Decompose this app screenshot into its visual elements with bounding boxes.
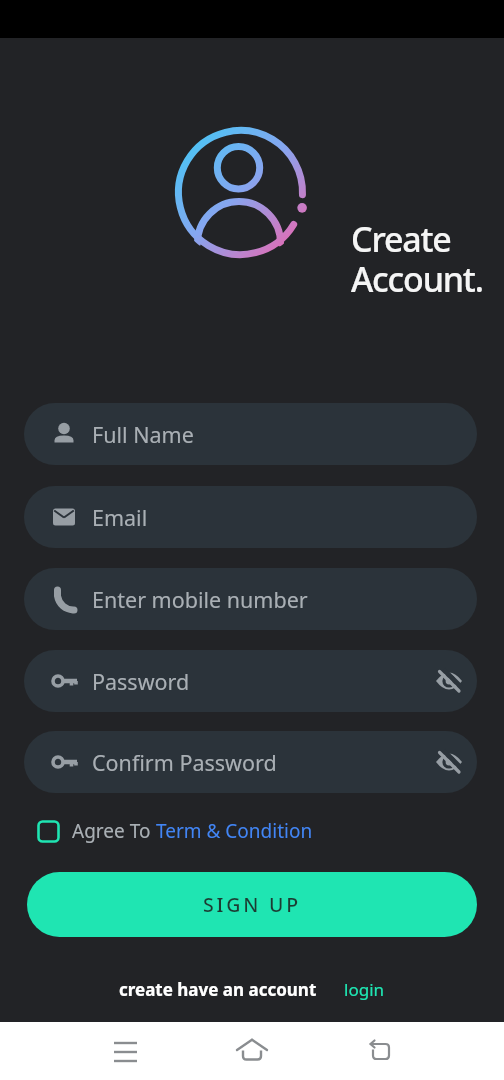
button[interactable]: Enter mobile number — [24, 568, 477, 630]
staticText: create have an account — [119, 978, 317, 1001]
staticText: Confirm Password — [92, 748, 277, 777]
button[interactable]: Confirm Password — [24, 731, 477, 793]
button[interactable]: Email — [24, 486, 477, 548]
staticText: Create Account. — [351, 216, 483, 302]
button[interactable]: login — [344, 978, 385, 1001]
button[interactable]: Password — [24, 650, 477, 712]
staticText: Agree To — [72, 818, 156, 844]
staticText: Password — [92, 667, 190, 696]
staticText: Full Name — [92, 420, 194, 449]
button[interactable] — [232, 1034, 272, 1068]
button[interactable]: Agree To — [37, 818, 313, 844]
button[interactable] — [110, 1036, 150, 1066]
staticText: SIGN UP — [203, 891, 301, 918]
button[interactable]: SIGN UP — [27, 872, 477, 937]
button[interactable] — [360, 1036, 400, 1066]
button[interactable]: Full Name — [24, 403, 477, 465]
button[interactable]: Term & Condition — [156, 818, 313, 844]
staticText: Enter mobile number — [92, 585, 308, 614]
staticText: Email — [92, 503, 148, 532]
